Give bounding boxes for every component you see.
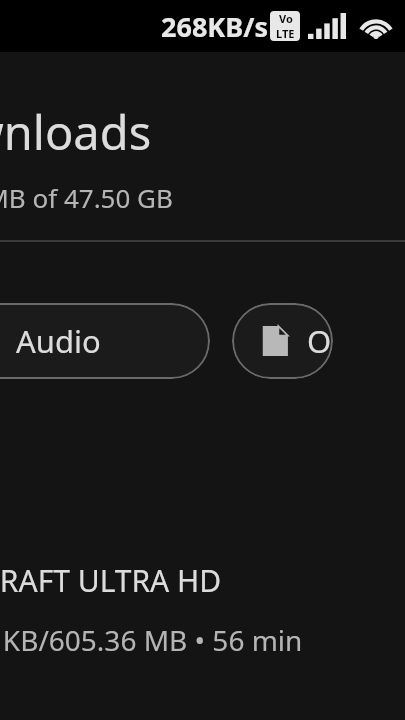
staticText: Audio (16, 320, 101, 362)
staticText: LTE (276, 26, 295, 41)
staticText: 32.18 MB of 47.50 GB (0, 180, 173, 214)
button[interactable]: Audio (0, 303, 210, 379)
staticText: Vo (279, 11, 293, 26)
button[interactable]: MINECRAFT ULTRA HD TEXTURES+RTX (0, 556, 405, 663)
staticText: Downloads (0, 100, 152, 158)
staticText: 268KB/s (161, 8, 268, 45)
button[interactable]: Other (232, 303, 333, 379)
staticText: MINECRAFT ULTRA HD TEXTURES+RTX (0, 560, 309, 601)
staticText: 233.00 KB/605.36 MB • 56 min left (0, 621, 313, 659)
